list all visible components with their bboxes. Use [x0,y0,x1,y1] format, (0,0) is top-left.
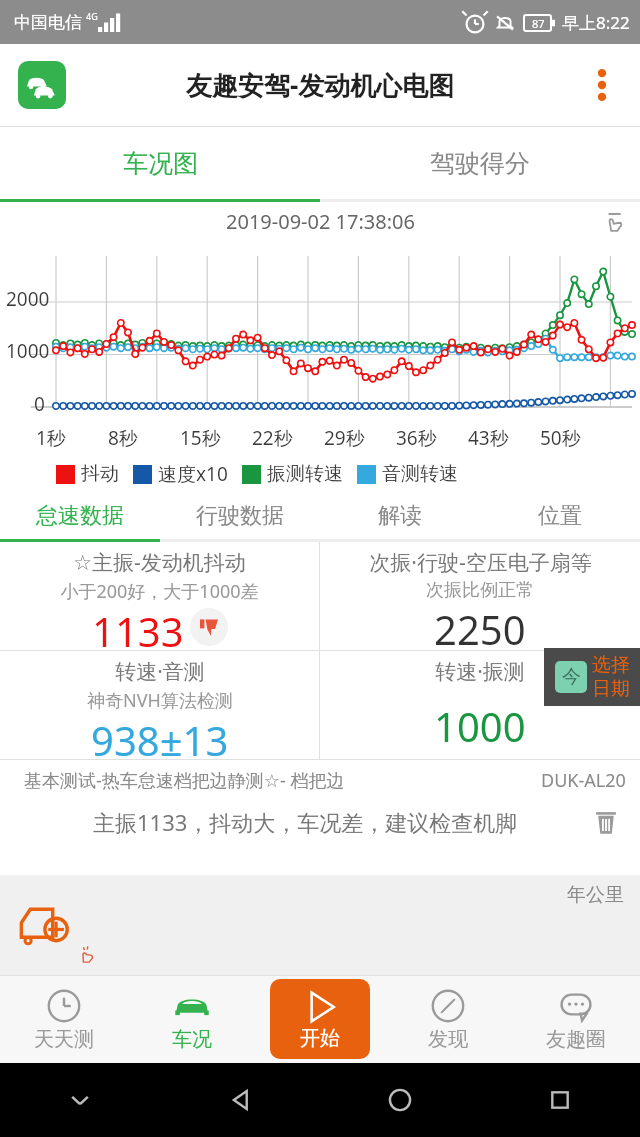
staticText: 主振1133，抖动大，车况差，建议检查机脚 [93,807,518,837]
staticText: 4G [86,10,98,22]
staticText: 速度x10 [158,461,228,487]
staticText: 友趣圈 [546,1027,606,1052]
staticText: 2019-09-02 17:38:06 [226,208,415,235]
staticText: DUK-AL20 [541,768,626,793]
staticText: 天天测 [34,1027,94,1052]
staticText: 怠速数据 [36,502,124,530]
button[interactable]: 发现 [384,975,512,1063]
staticText: 43秒 [468,425,509,451]
staticText: 车况 [172,1027,212,1052]
staticText: 29秒 [324,425,365,451]
staticText: 1秒 [36,425,66,451]
staticText: 转速·振测 [435,657,525,686]
staticText: 年公里 [567,883,624,907]
staticText: 938±13 [91,713,229,759]
button[interactable]: 友趣圈 [512,975,640,1063]
staticText: 1000 [434,699,526,753]
staticText: 小于200好，大于1000差 [60,579,259,604]
staticText: ☆主振-发动机抖动 [73,548,246,577]
staticText: 22秒 [252,425,293,451]
staticText: 基本测试-热车怠速档把边静测☆- 档把边 [24,768,345,793]
staticText: 抖动 [81,462,119,486]
button[interactable]: 今 [544,648,640,706]
button[interactable]: Tap hint [598,206,628,236]
staticText: 日期 [592,677,630,701]
button[interactable]: App icon [18,61,66,109]
staticText: 2000 [6,286,50,312]
staticText: 8秒 [108,425,138,451]
button[interactable]: 转速·音测 [0,651,319,759]
staticText: 位置 [538,502,582,530]
staticText: 发现 [428,1027,468,1052]
staticText: 车况图 [123,148,198,179]
button[interactable]: 次振·行驶-空压电子扇等 [320,542,640,650]
button[interactable]: 车况 [128,975,256,1063]
button[interactable]: Back [160,1063,320,1137]
staticText: 36秒 [396,425,437,451]
button[interactable]: 天天测 [0,975,128,1063]
staticText: 0 [34,391,45,417]
button[interactable]: 转速·振测 [320,651,640,759]
staticText: 今 [562,665,581,689]
button[interactable]: Hide keyboard [0,1063,160,1137]
staticText: 友趣安驾-发动机心电图 [186,67,455,103]
staticText: 驾驶得分 [430,148,530,179]
button[interactable]: 行驶数据 [160,493,320,539]
staticText: 次振比例正常 [426,579,534,602]
staticText: 选择 [592,653,630,677]
staticText: 50秒 [540,425,581,451]
button[interactable]: 解读 [320,493,480,539]
button[interactable]: 位置 [480,493,640,539]
staticText: 15秒 [180,425,221,451]
staticText: 87 [532,16,545,31]
button[interactable]: 车况图 [0,127,320,199]
staticText: 解读 [378,502,422,530]
button[interactable]: Add vehicle [18,897,74,953]
button[interactable]: Recent apps [480,1063,640,1137]
button[interactable]: ☆主振-发动机抖动 [0,542,319,650]
staticText: 音测转速 [382,462,458,486]
staticText: 开始 [300,1026,340,1051]
button[interactable]: Home [320,1063,480,1137]
staticText: 神奇NVH算法检测 [87,688,233,713]
button[interactable]: 怠速数据 [0,493,160,539]
staticText: 行驶数据 [196,502,284,530]
staticText: 1000 [6,338,50,364]
staticText: 1133 [92,604,184,650]
staticText: 转速·音测 [115,657,205,686]
staticText: 2250 [434,602,526,650]
button[interactable]: More options [582,65,622,105]
button[interactable]: 驾驶得分 [320,127,640,199]
staticText: 早上8:22 [562,11,630,34]
staticText: 中国电信 [14,12,82,33]
button[interactable]: Delete [588,804,624,840]
staticText: 振测转速 [267,462,343,486]
staticText: 次振·行驶-空压电子扇等 [369,548,592,577]
button[interactable]: 开始 [270,979,370,1059]
